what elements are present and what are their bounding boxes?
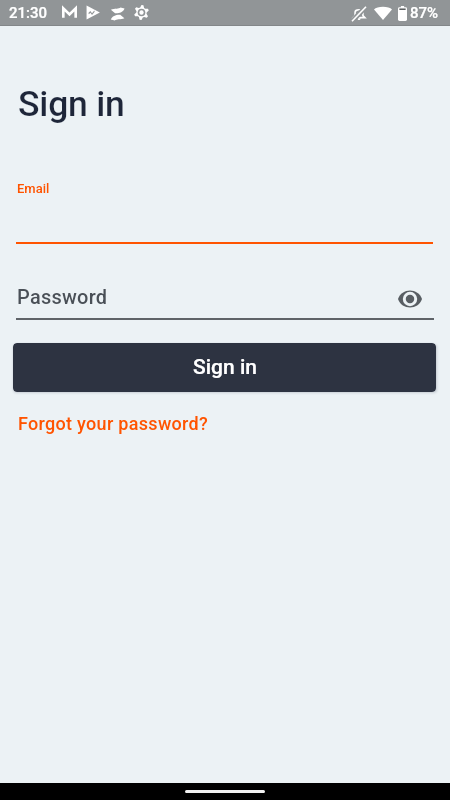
staticText: Sign in — [193, 355, 257, 380]
staticText: Password — [17, 285, 108, 308]
button[interactable]: Forgot your password? — [18, 413, 209, 434]
button[interactable]: Show password — [394, 283, 426, 315]
staticText: Forgot your password? — [18, 413, 209, 434]
staticText: Sign in — [18, 83, 125, 125]
button[interactable]: Sign in — [13, 343, 436, 392]
staticText: 21:30 — [9, 4, 48, 22]
staticText: 87% — [410, 4, 439, 22]
staticText: Email — [17, 181, 50, 196]
